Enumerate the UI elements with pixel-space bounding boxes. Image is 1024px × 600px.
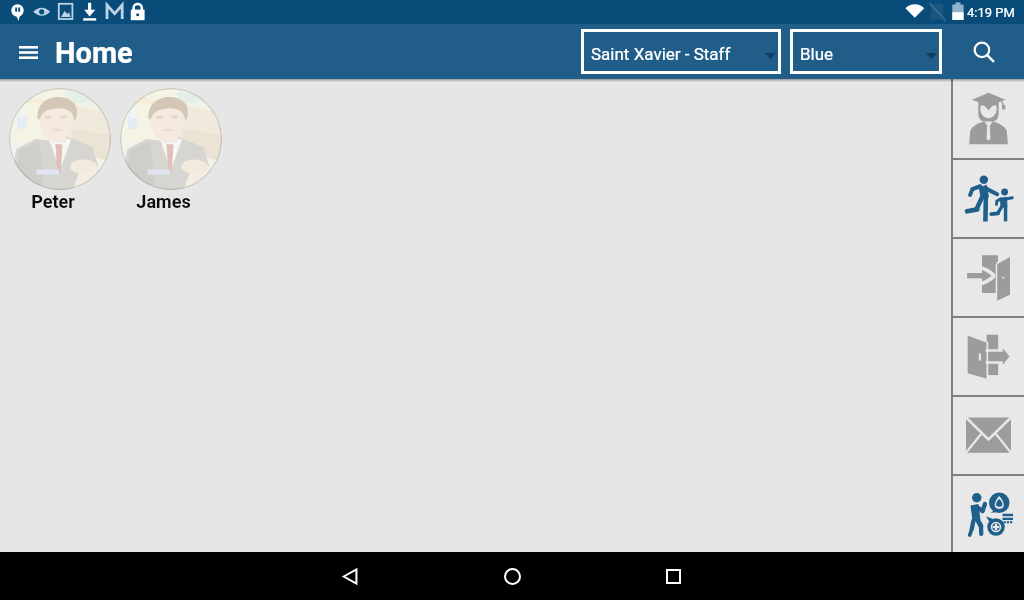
button[interactable]: Sign in	[953, 239, 1024, 316]
button[interactable]: James	[111, 79, 216, 212]
staticText: Saint Xavier - Staff	[591, 44, 731, 64]
button[interactable]: Search	[964, 32, 1004, 72]
staticText: Blue	[800, 44, 834, 64]
button[interactable]: Menu	[10, 34, 46, 70]
button[interactable]: Blue	[790, 29, 942, 74]
staticText: James	[136, 191, 191, 212]
staticText: Peter	[31, 191, 75, 212]
staticText: 4:19 PM	[967, 5, 1015, 20]
button[interactable]: Recents	[645, 552, 701, 600]
button[interactable]: Incidents	[953, 476, 1024, 552]
button[interactable]: Sign out	[953, 318, 1024, 395]
button[interactable]: Messages	[953, 397, 1024, 474]
button[interactable]: Peter	[0, 79, 105, 212]
staticText: Home	[55, 36, 133, 70]
button[interactable]: Saint Xavier - Staff	[581, 29, 781, 74]
button[interactable]: Students	[953, 160, 1024, 237]
button[interactable]: Home	[484, 552, 540, 600]
button[interactable]: Staff	[953, 79, 1024, 158]
button[interactable]: Back	[322, 552, 378, 600]
